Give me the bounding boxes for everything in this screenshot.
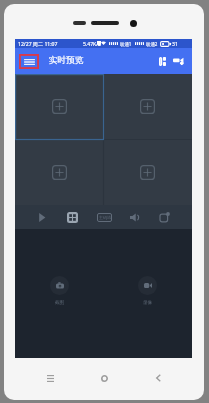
button[interactable]: Add channel xyxy=(15,139,103,205)
button[interactable]: Recents xyxy=(42,370,58,386)
button[interactable]: Add camera xyxy=(168,48,188,74)
button[interactable]: Split layout xyxy=(152,48,172,74)
button[interactable]: PTZ control xyxy=(155,207,175,227)
staticText: 5.47K/s xyxy=(83,41,101,48)
button[interactable]: Back xyxy=(150,370,166,386)
staticText: 录像 xyxy=(143,300,153,306)
button[interactable]: Menu xyxy=(19,54,39,69)
button[interactable]: 录像 xyxy=(138,276,157,306)
button[interactable]: Add channel xyxy=(103,139,192,205)
staticText: 联通2 xyxy=(146,41,158,47)
staticText: 31 xyxy=(172,41,178,48)
button[interactable]: Home xyxy=(96,370,112,386)
staticText: 12/27 周二 11:07 xyxy=(18,41,58,48)
button[interactable]: Play xyxy=(32,207,52,227)
staticText: 主码流 xyxy=(99,215,111,220)
button[interactable]: Add channel xyxy=(103,74,192,139)
button[interactable]: Add channel xyxy=(15,74,103,139)
staticText: 实时预览 xyxy=(49,55,84,66)
button[interactable]: Sound xyxy=(125,207,145,227)
button[interactable]: Split layout xyxy=(62,207,82,227)
staticText: 截图 xyxy=(55,300,65,306)
button[interactable]: Stream quality xyxy=(93,207,115,227)
staticText: 联通1 xyxy=(120,41,132,47)
button[interactable]: 截图 xyxy=(50,276,69,306)
